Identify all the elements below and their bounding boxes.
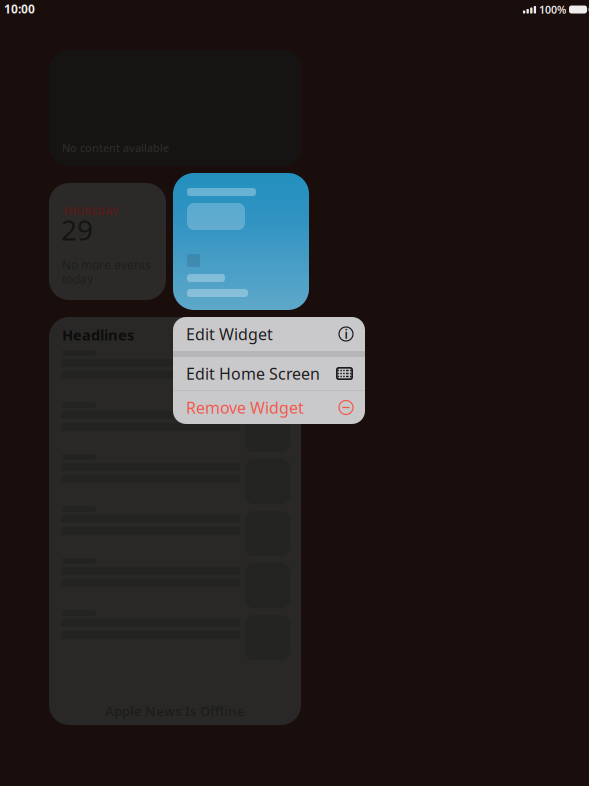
staticText: No content available <box>62 141 169 155</box>
staticText: Apple News Is Offline <box>105 702 245 720</box>
staticText: Edit Widget <box>186 323 273 345</box>
staticText: Edit Home Screen <box>186 363 320 384</box>
staticText: Remove Widget <box>186 397 304 418</box>
button[interactable]: Edit Home Screen <box>173 357 365 390</box>
staticText: 100% <box>539 2 566 17</box>
staticText: i <box>344 326 347 342</box>
staticText: THURSDAY <box>62 204 119 218</box>
staticText: 10:00 <box>4 1 35 17</box>
button[interactable]: Remove Widget <box>173 391 365 424</box>
staticText: 29 <box>61 211 93 248</box>
staticText: No more events <box>62 257 151 273</box>
button[interactable]: Edit Widget <box>173 317 365 351</box>
staticText: today <box>62 271 93 287</box>
staticText: Headlines <box>62 325 134 344</box>
